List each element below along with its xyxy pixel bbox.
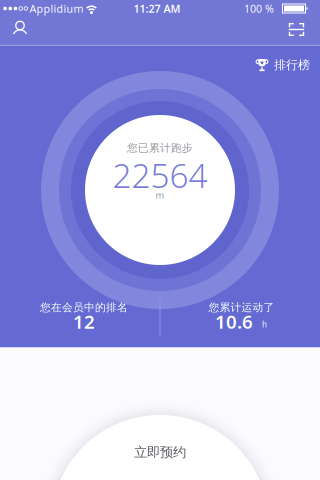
staticText: 100 %: [244, 1, 274, 16]
staticText: 排行榜: [274, 58, 310, 72]
staticText: h: [262, 319, 267, 330]
button[interactable]: 排行榜: [256, 58, 310, 72]
staticText: 您累计运动了: [208, 301, 274, 314]
staticText: 您在会员中的排名: [40, 301, 128, 314]
staticText: 22564: [112, 153, 207, 197]
button[interactable]: 立即预约: [51, 415, 269, 480]
staticText: Applidium: [29, 1, 83, 16]
staticText: 11:27 AM: [133, 1, 180, 16]
staticText: m: [155, 189, 164, 201]
button[interactable]: [5, 16, 35, 42]
staticText: 10.6: [215, 309, 253, 334]
staticText: 立即预约: [134, 444, 186, 460]
staticText: 您已累计跑步: [127, 141, 193, 154]
staticText: 12: [73, 309, 95, 334]
button[interactable]: [281, 16, 311, 42]
